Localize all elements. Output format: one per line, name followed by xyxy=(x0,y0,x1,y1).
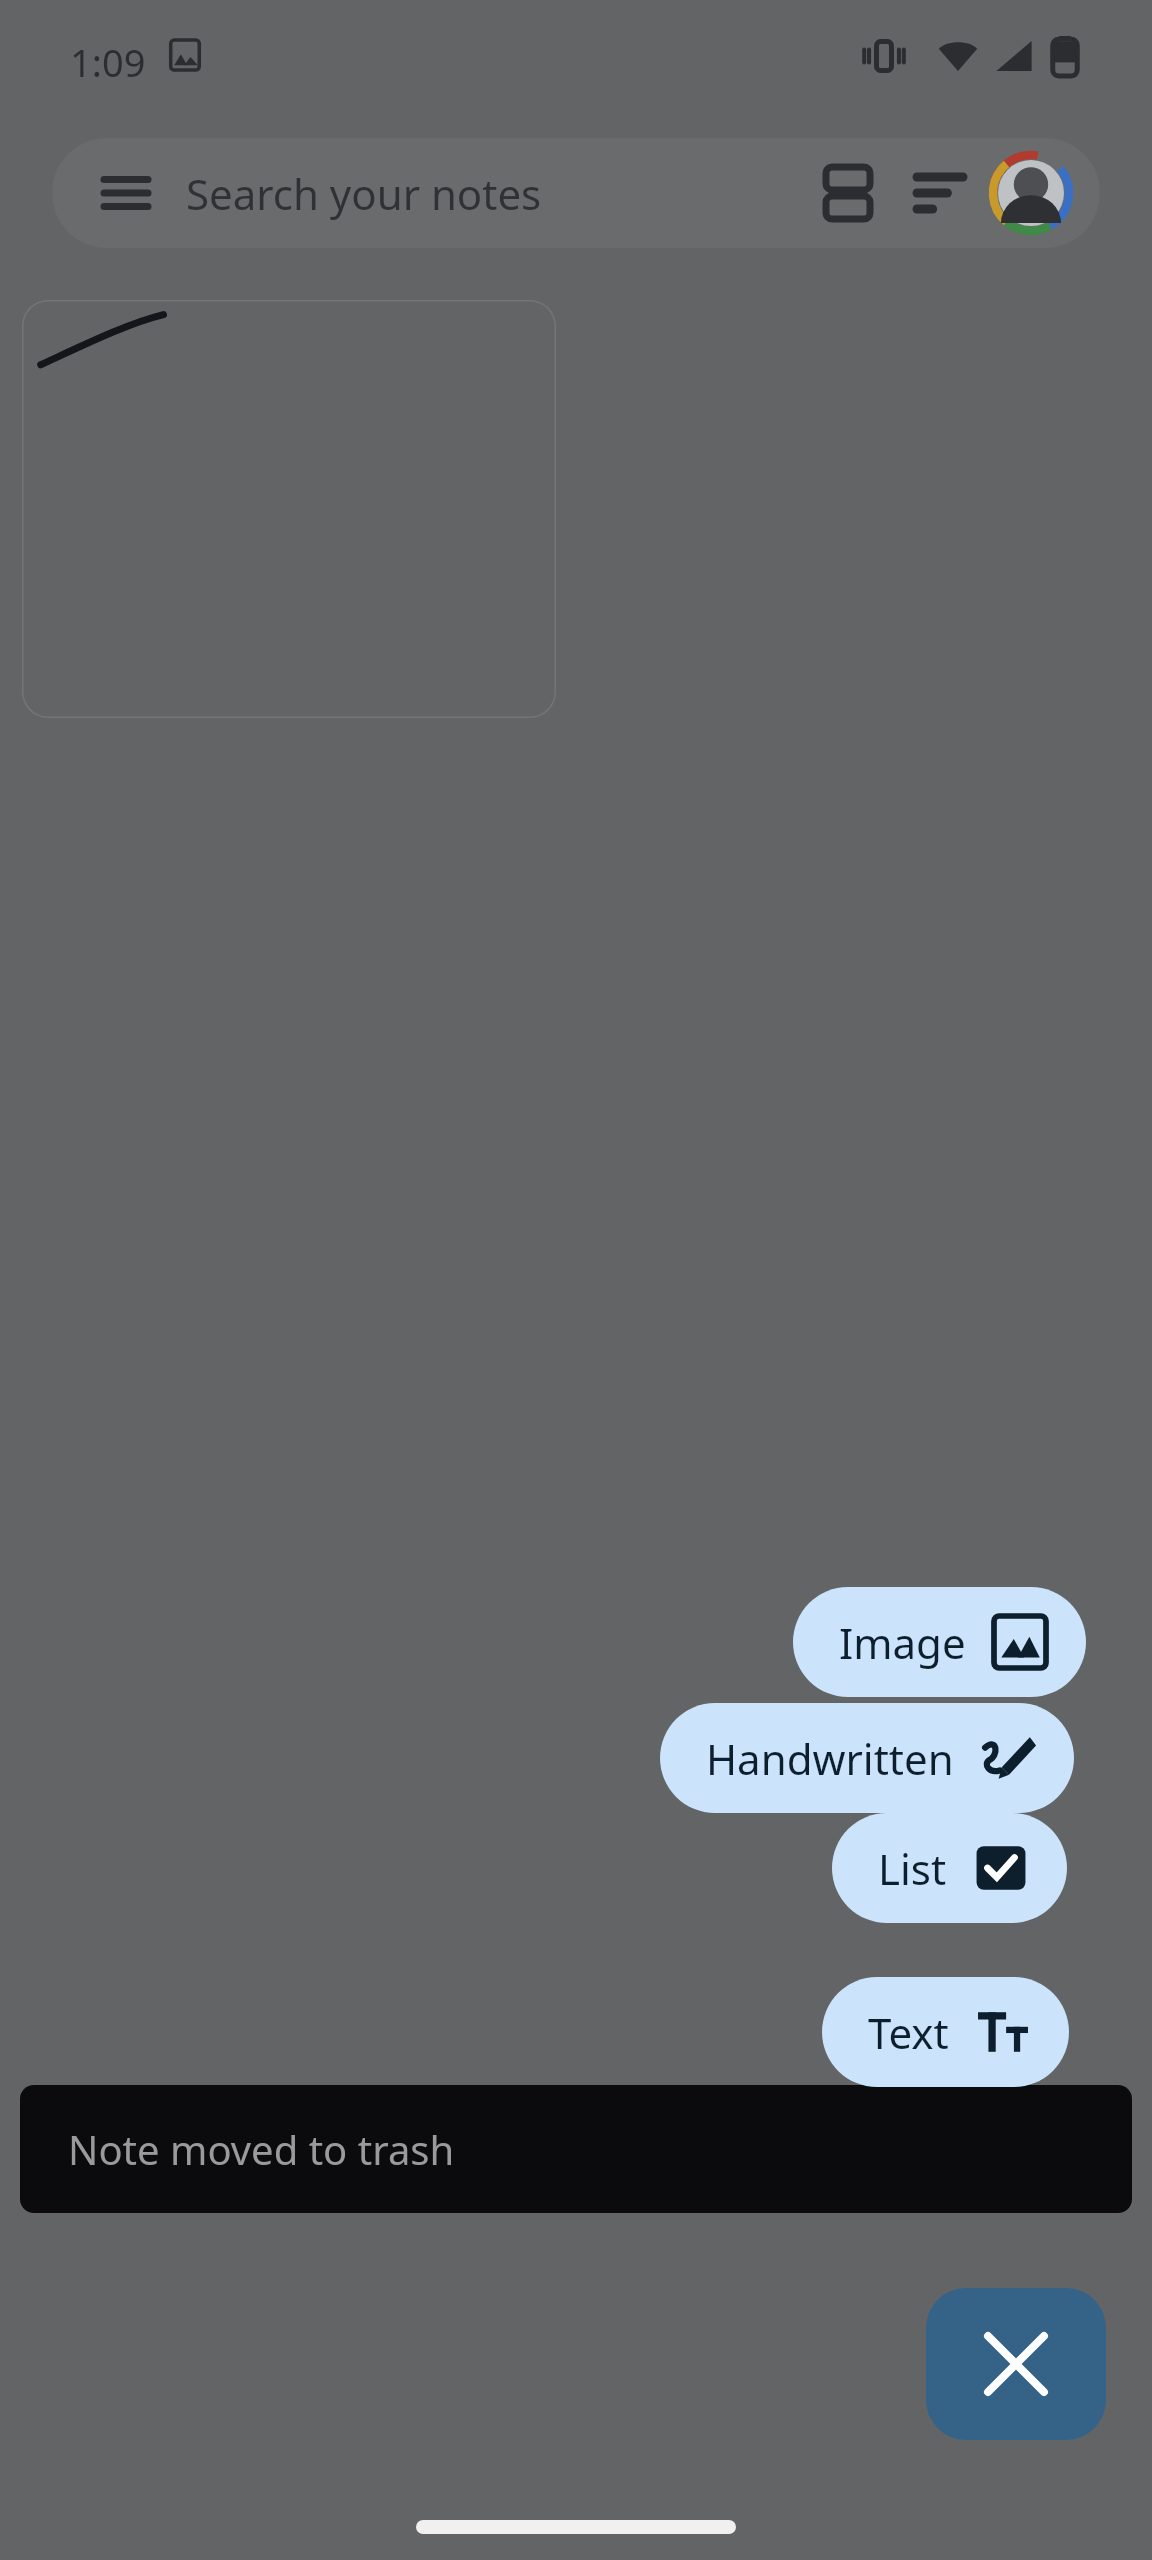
button[interactable] xyxy=(22,300,556,718)
staticText: Search your notes xyxy=(186,165,802,222)
button[interactable]: Image xyxy=(793,1587,1086,1697)
button[interactable]: Handwritten xyxy=(660,1703,1074,1813)
button[interactable]: Open navigation drawer xyxy=(52,138,1100,248)
button[interactable]: Note moved to trash xyxy=(20,2085,1132,2213)
staticText: List xyxy=(878,1840,947,1897)
button[interactable]: Open navigation drawer xyxy=(96,163,156,223)
staticText: 1:09 xyxy=(70,36,146,88)
button[interactable]: Switch view xyxy=(802,147,894,239)
button[interactable]: Sort notes xyxy=(894,147,986,239)
staticText: Image xyxy=(839,1614,966,1671)
staticText: Text xyxy=(868,2004,949,2061)
staticText: Note moved to trash xyxy=(68,2122,455,2176)
button[interactable]: List xyxy=(832,1813,1067,1923)
button[interactable]: Account xyxy=(986,148,1076,238)
button[interactable]: Text xyxy=(822,1977,1069,2087)
button[interactable]: Close menu xyxy=(926,2288,1106,2440)
staticText: Handwritten xyxy=(706,1730,954,1787)
